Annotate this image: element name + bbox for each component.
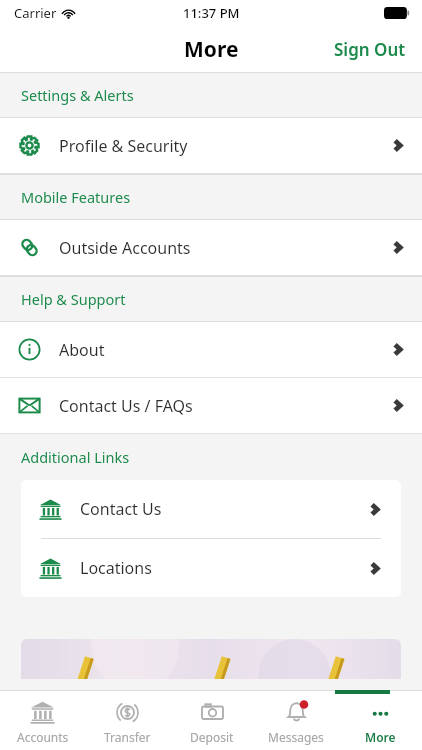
- button[interactable]: Transfer: [85, 695, 170, 750]
- other: Contact Us / FAQs: [18, 394, 41, 417]
- staticText: Carrier: [14, 4, 57, 22]
- staticText: About: [59, 339, 389, 361]
- staticText: Outside Accounts: [59, 237, 389, 259]
- other: More: [368, 700, 393, 725]
- staticText: Additional Links: [21, 447, 130, 467]
- staticText: Deposit: [190, 729, 234, 745]
- other: Messages: [284, 700, 309, 725]
- button[interactable]: Contact Us / FAQs: [0, 378, 422, 433]
- other: Transfer: [115, 700, 140, 725]
- button[interactable]: Sign Out: [318, 30, 422, 69]
- staticText: 11:37 PM: [183, 4, 240, 22]
- other: Deposit: [200, 700, 225, 725]
- staticText: Mobile Features: [21, 187, 131, 207]
- staticText: Sign Out: [334, 38, 406, 61]
- other: Outside Accounts: [18, 236, 41, 259]
- staticText: Transfer: [104, 729, 151, 745]
- button[interactable]: Profile & Security: [0, 118, 422, 173]
- button[interactable]: More: [338, 695, 422, 750]
- button[interactable]: Messages: [254, 695, 338, 750]
- staticText: Settings & Alerts: [21, 85, 134, 105]
- button[interactable]: Contact Us: [21, 480, 401, 538]
- button[interactable]: [21, 639, 401, 679]
- staticText: More: [365, 729, 396, 745]
- staticText: Locations: [80, 557, 366, 579]
- other: About: [18, 338, 41, 361]
- button[interactable]: Deposit: [170, 695, 254, 750]
- staticText: Contact Us: [80, 498, 366, 520]
- button[interactable]: Locations: [21, 539, 401, 597]
- button[interactable]: About: [0, 322, 422, 377]
- staticText: Accounts: [17, 729, 69, 745]
- staticText: Contact Us / FAQs: [59, 395, 389, 417]
- staticText: Messages: [268, 729, 324, 745]
- other: Profile & Security: [18, 134, 41, 157]
- staticText: Help & Support: [21, 289, 126, 309]
- button[interactable]: Accounts: [0, 695, 85, 750]
- staticText: Profile & Security: [59, 135, 389, 157]
- staticText: More: [184, 35, 239, 64]
- button[interactable]: Outside Accounts: [0, 220, 422, 275]
